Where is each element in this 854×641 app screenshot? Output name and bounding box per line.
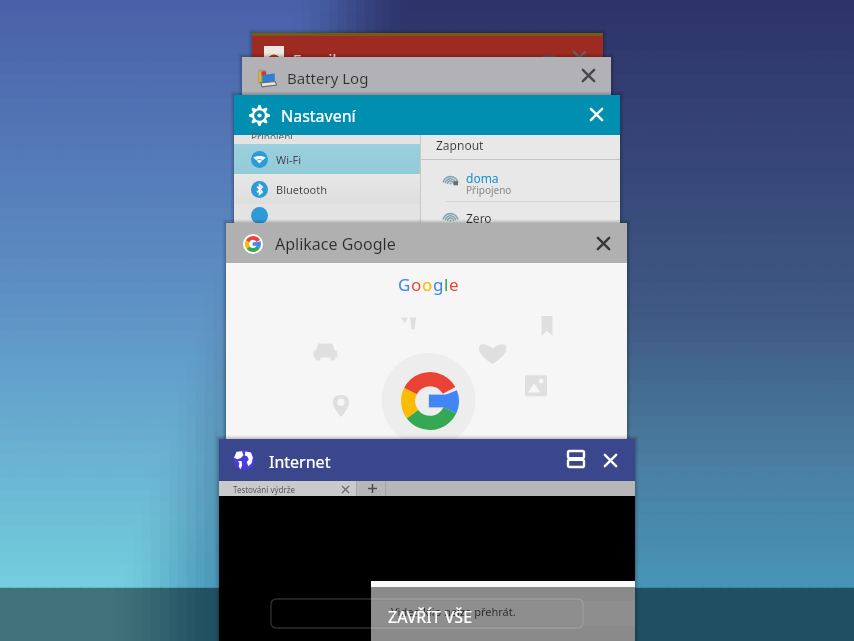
staticText: g <box>433 273 444 296</box>
button[interactable]: Close Battery Log <box>573 60 604 91</box>
staticText: o <box>411 273 422 296</box>
button[interactable]: Battery Log <box>242 57 611 99</box>
button[interactable]: Zero <box>421 202 620 226</box>
staticText: Připojeno <box>466 183 512 197</box>
button[interactable]: Testování výdrže <box>219 481 356 496</box>
staticText: E-mail <box>293 49 337 69</box>
button[interactable]: Close Internet <box>595 445 626 476</box>
staticText: e <box>449 273 459 296</box>
staticText: Video klip nelze přehrát. <box>391 604 516 619</box>
staticText: Wi-Fi <box>276 152 302 167</box>
staticText: Bluetooth <box>276 182 328 197</box>
button[interactable]: Wi-Fi <box>234 144 420 174</box>
staticText: ZAVŘÍT VŠE <box>388 606 473 628</box>
button[interactable]: doma <box>421 160 620 201</box>
button[interactable]: Close tab <box>338 482 352 496</box>
staticText: Nastavení <box>281 105 356 127</box>
staticText: o <box>422 273 433 296</box>
button[interactable]: Nastavení <box>234 95 620 226</box>
staticText: G <box>398 273 411 296</box>
staticText: Zero <box>466 210 492 226</box>
button[interactable]: Internet <box>219 439 635 641</box>
button[interactable]: E-mail <box>252 33 603 72</box>
button[interactable]: Tabs <box>559 442 593 476</box>
staticText: Připojení <box>251 130 293 139</box>
button[interactable]: Bluetooth <box>234 174 420 204</box>
button[interactable]: ZAVŘÍT VŠE <box>381 602 480 632</box>
staticText: Battery Log <box>287 68 369 88</box>
button[interactable]: Aplikace Google <box>226 223 627 442</box>
button[interactable]: New tab <box>366 482 379 495</box>
staticText: Aplikace Google <box>275 233 396 255</box>
button[interactable]: Close Nastavení <box>581 99 612 130</box>
staticText: Testování výdrže <box>233 484 296 495</box>
button[interactable]: Close Aplikace Google <box>588 228 619 259</box>
staticText: l <box>444 273 449 296</box>
staticText: Internet <box>269 451 331 473</box>
staticText: doma <box>466 170 499 186</box>
staticText: Zapnout <box>436 137 484 153</box>
